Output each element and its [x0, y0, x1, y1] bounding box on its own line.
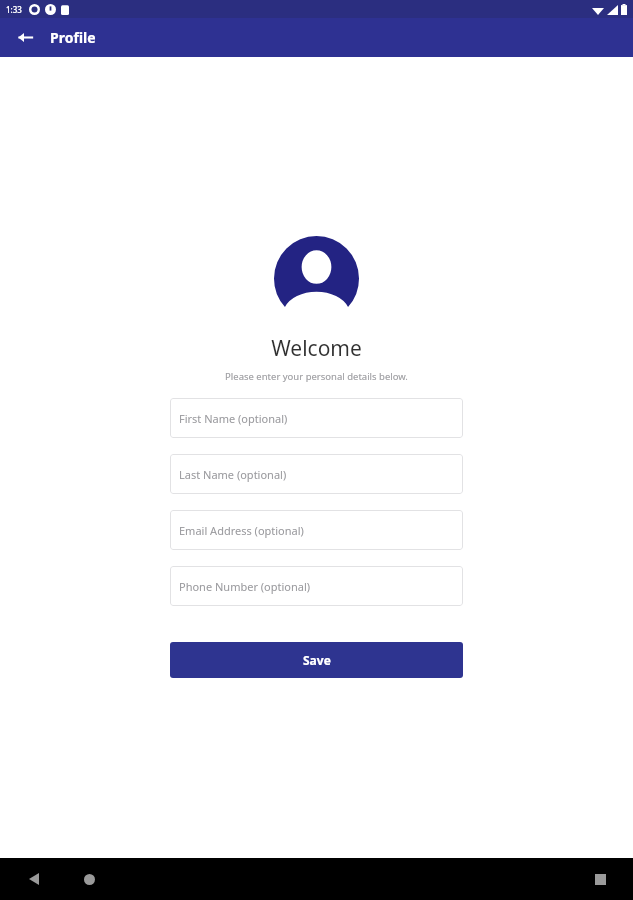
button[interactable]: Save: [170, 642, 463, 678]
staticText: First Name (optional): [179, 411, 288, 426]
button[interactable]: Phone Number (optional): [170, 566, 463, 606]
button[interactable]: First Name (optional): [170, 398, 463, 438]
staticText: Phone Number (optional): [179, 579, 311, 594]
staticText: 1:33: [6, 4, 22, 15]
staticText: Email Address (optional): [179, 523, 304, 538]
staticText: Please enter your personal details below…: [225, 370, 408, 383]
button[interactable]: Recent apps: [583, 862, 617, 896]
button[interactable]: Email Address (optional): [170, 510, 463, 550]
staticText: Welcome: [271, 334, 362, 363]
staticText: Save: [303, 652, 331, 668]
staticText: Profile: [50, 28, 96, 47]
button[interactable]: Last Name (optional): [170, 454, 463, 494]
button[interactable]: Back: [6, 18, 45, 57]
staticText: Last Name (optional): [179, 467, 287, 482]
button[interactable]: Home: [72, 862, 106, 896]
button[interactable]: Back: [17, 862, 51, 896]
